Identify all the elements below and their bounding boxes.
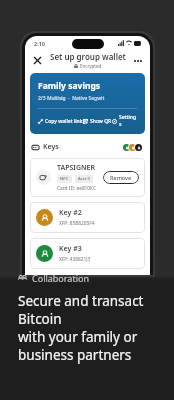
button[interactable]: More options [131, 54, 144, 67]
staticText: Key #3 [59, 244, 82, 254]
staticText: Keys [43, 142, 59, 152]
button[interactable]: Copy wallet link [38, 117, 83, 126]
staticText: Acct 0 [78, 176, 90, 182]
staticText: 2:10 [34, 40, 45, 47]
staticText: Secure and transact Bitcoin with your fa… [18, 292, 174, 364]
staticText: Family savings [38, 80, 101, 92]
staticText: NFC [60, 176, 69, 182]
staticText: Remove [110, 174, 132, 181]
staticText: Set up group wallet [50, 51, 126, 62]
button[interactable]: Family savings [30, 73, 145, 134]
staticText: Card ID: ee810KC [57, 185, 97, 192]
staticText: Copy wallet link [45, 118, 83, 125]
staticText: Encrypted [80, 63, 102, 69]
button[interactable]: Show QR [83, 117, 112, 126]
button[interactable]: Key #2 [30, 202, 145, 233]
button[interactable]: Close [31, 54, 44, 67]
staticText: Settings [119, 114, 137, 128]
button[interactable]: Settings [112, 113, 137, 129]
button[interactable]: Remove [103, 171, 139, 184]
staticText: XFP: 85B8205F4 [59, 220, 95, 227]
button[interactable]: Key #3 [30, 238, 145, 269]
staticText: TAPSIGNER [57, 163, 95, 173]
staticText: Key #2 [59, 208, 82, 218]
staticText: Show QR [90, 118, 112, 125]
staticText: Collaboration [32, 272, 89, 284]
staticText: XFP: 438821J3 [59, 256, 91, 263]
button[interactable]: TAPSIGNER [30, 158, 145, 197]
staticText: 2/3 Multisig · Native Segwit [38, 95, 105, 102]
